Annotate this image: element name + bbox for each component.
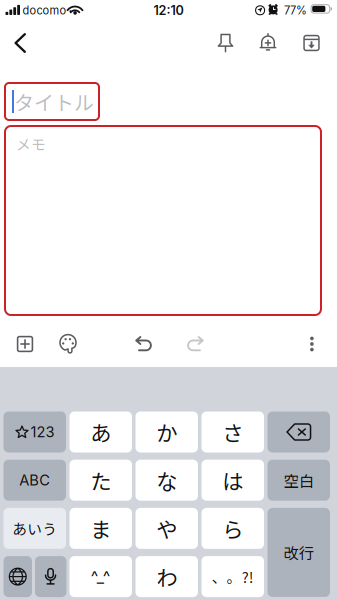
button[interactable]: あいう	[3, 508, 66, 549]
staticText: docomo	[22, 4, 66, 17]
staticText: さ	[222, 417, 243, 447]
staticText: ABC	[19, 471, 50, 489]
button[interactable]: な	[135, 460, 198, 501]
staticText: か	[156, 417, 177, 447]
button[interactable]: Memo	[5, 126, 321, 315]
staticText: メモ	[16, 133, 46, 154]
button[interactable]: わ	[135, 556, 198, 597]
button[interactable]: Numbers and symbols	[3, 411, 66, 452]
button[interactable]: Return	[267, 508, 330, 597]
staticText: 123	[30, 423, 54, 441]
staticText: タイトル	[14, 87, 94, 116]
button[interactable]: た	[69, 460, 132, 501]
staticText: 77%	[284, 4, 307, 17]
button[interactable]: Insert	[5, 324, 45, 364]
staticText: は	[222, 465, 243, 496]
button[interactable]: Pin	[205, 23, 245, 63]
button[interactable]: ABC	[3, 460, 66, 501]
staticText: ^_^	[91, 567, 111, 586]
button[interactable]: Title	[5, 83, 99, 120]
staticText: あいう	[12, 518, 57, 539]
button[interactable]: Delete	[267, 411, 330, 452]
button[interactable]: Dictation	[35, 556, 66, 597]
button[interactable]: さ	[201, 411, 264, 452]
button[interactable]: 、。?!	[201, 556, 264, 597]
staticText: や	[156, 513, 177, 544]
button[interactable]: Undo	[124, 324, 164, 364]
button[interactable]: あ	[69, 411, 132, 452]
button[interactable]: Switch keyboard	[3, 556, 32, 597]
staticText: ら	[222, 513, 243, 544]
button[interactable]: Reminder	[248, 23, 288, 63]
button[interactable]: Archive	[291, 23, 331, 63]
staticText: 空白	[284, 469, 314, 491]
button[interactable]: は	[201, 460, 264, 501]
button[interactable]: Emoticon	[69, 556, 132, 597]
staticText: 改行	[284, 541, 314, 563]
button[interactable]: や	[135, 508, 198, 549]
button[interactable]: More options	[292, 324, 332, 364]
staticText: た	[90, 465, 111, 496]
button[interactable]: か	[135, 411, 198, 452]
button[interactable]: Color	[48, 324, 88, 364]
staticText: ま	[90, 513, 111, 544]
staticText: な	[156, 465, 177, 496]
staticText: 12:10	[153, 3, 183, 18]
button[interactable]: ら	[201, 508, 264, 549]
button[interactable]: Back	[0, 23, 40, 63]
staticText: 、。?!	[212, 566, 254, 587]
button[interactable]: ま	[69, 508, 132, 549]
staticText: あ	[90, 417, 111, 447]
button[interactable]: Space	[267, 460, 330, 501]
button[interactable]: Redo	[175, 324, 215, 364]
staticText: わ	[156, 561, 177, 592]
